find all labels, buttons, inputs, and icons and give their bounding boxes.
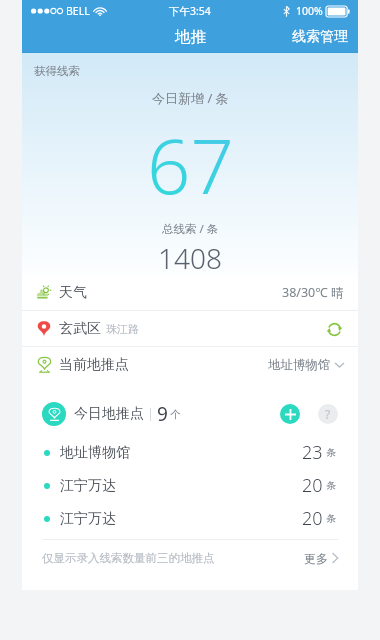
staticText: 条 bbox=[326, 479, 336, 492]
button[interactable]: 玄武区 bbox=[22, 311, 358, 346]
staticText: 23 bbox=[302, 440, 323, 465]
staticText: 线索管理 bbox=[292, 28, 348, 46]
staticText: 获得线索 bbox=[34, 64, 80, 78]
button[interactable]: Refresh location bbox=[324, 319, 344, 339]
staticText: 个 bbox=[170, 408, 181, 421]
button[interactable]: 江宁万达 bbox=[30, 502, 350, 535]
staticText: 总线索 / 条 bbox=[162, 221, 219, 237]
button[interactable]: 地推 bbox=[167, 25, 214, 49]
button[interactable]: 线索管理 bbox=[282, 24, 358, 50]
staticText: 当前地推点 bbox=[59, 356, 129, 374]
staticText: ? bbox=[325, 406, 331, 422]
button[interactable]: Add spot bbox=[280, 404, 300, 424]
staticText: 条 bbox=[326, 446, 336, 459]
button[interactable]: Help bbox=[318, 404, 338, 424]
staticText: 下午3:54 bbox=[169, 4, 211, 18]
staticText: 今日新增 / 条 bbox=[152, 89, 229, 107]
button[interactable]: 江宁万达 bbox=[30, 469, 350, 502]
staticText: 100% bbox=[296, 4, 323, 18]
staticText: 江宁万达 bbox=[60, 510, 116, 528]
staticText: 9 bbox=[157, 401, 168, 427]
staticText: 地推 bbox=[175, 27, 206, 47]
staticText: 地址博物馆 bbox=[268, 357, 331, 373]
staticText: 38/30℃ 晴 bbox=[282, 284, 344, 301]
staticText: 20 bbox=[302, 506, 323, 531]
staticText: 今日地推点 bbox=[74, 405, 144, 423]
staticText: 67 bbox=[147, 113, 234, 217]
staticText: 江宁万达 bbox=[60, 477, 116, 495]
staticText: 玄武区 bbox=[59, 320, 101, 338]
staticText: 更多 bbox=[304, 551, 328, 566]
staticText: 地址博物馆 bbox=[60, 444, 130, 462]
button[interactable]: 天气 bbox=[22, 275, 358, 310]
staticText: 天气 bbox=[59, 284, 87, 302]
staticText: 1408 bbox=[158, 239, 222, 275]
button[interactable]: 地址博物馆 bbox=[30, 436, 350, 469]
staticText: 条 bbox=[326, 512, 336, 525]
staticText: 仅显示录入线索数量前三的地推点 bbox=[42, 551, 215, 565]
staticText: 珠江路 bbox=[106, 322, 139, 336]
button[interactable]: 当前地推点 bbox=[22, 347, 358, 382]
staticText: 20 bbox=[302, 473, 323, 498]
button[interactable]: 仅显示录入线索数量前三的地推点 bbox=[30, 540, 350, 576]
staticText: BELL bbox=[66, 4, 90, 18]
